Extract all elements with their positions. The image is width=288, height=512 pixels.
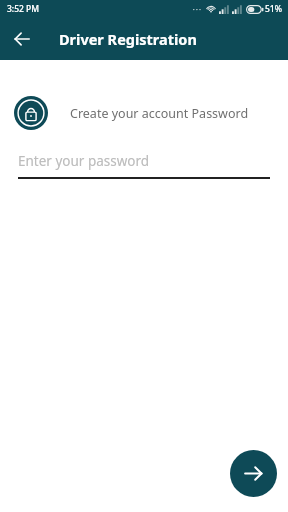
staticText: Driver Registration bbox=[59, 29, 197, 49]
staticText: 3:52 PM bbox=[7, 3, 40, 15]
button[interactable]: Next bbox=[230, 450, 277, 497]
button[interactable]: Back bbox=[6, 23, 38, 55]
staticText: Create your account Password bbox=[70, 105, 249, 122]
staticText: 51% bbox=[265, 3, 282, 15]
staticText: Enter your password bbox=[18, 152, 150, 170]
button[interactable]: Enter your password bbox=[18, 152, 270, 179]
